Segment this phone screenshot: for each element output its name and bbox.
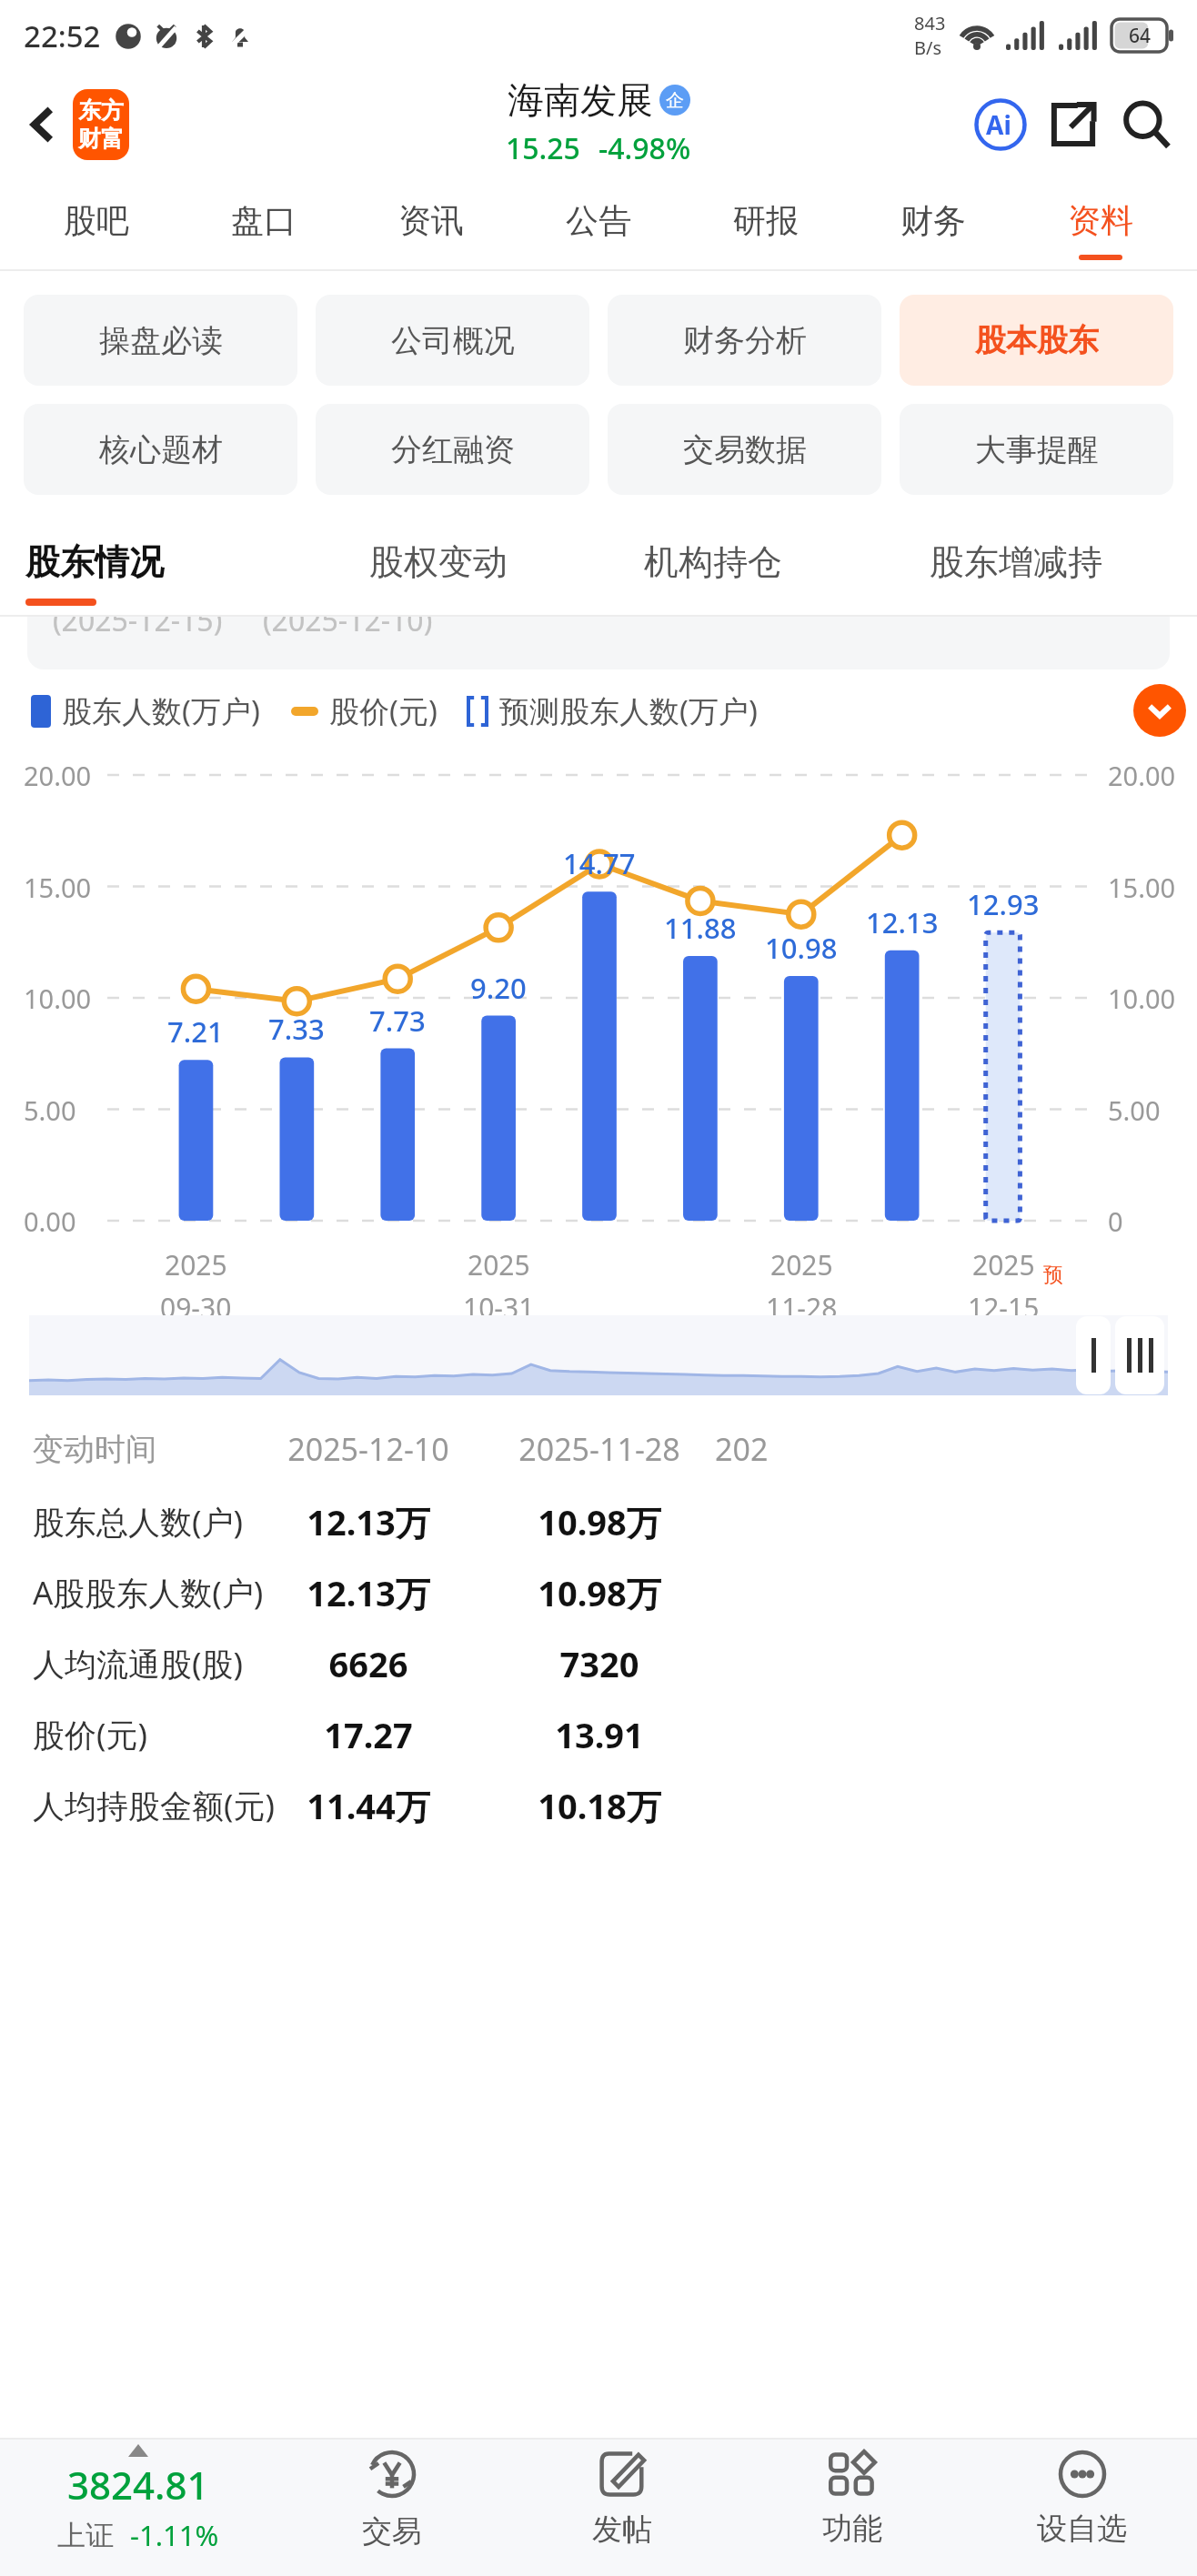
staticText: A股股东人数(户) bbox=[33, 1571, 264, 1615]
button[interactable]: 股价(元) bbox=[0, 1699, 1197, 1770]
button[interactable]: 大事提醒 bbox=[900, 404, 1173, 495]
staticText: 12.13 bbox=[866, 903, 939, 941]
staticText: 10.98万 bbox=[484, 1569, 715, 1616]
staticText: 10-31 bbox=[463, 1289, 535, 1326]
staticText: (2025-12-15) bbox=[53, 617, 223, 640]
staticText: 7.21 bbox=[167, 1012, 224, 1051]
staticText: 11.88 bbox=[664, 909, 737, 947]
staticText: 海南发展 bbox=[508, 77, 653, 123]
staticText: 20.00 bbox=[24, 758, 92, 793]
button[interactable]: AI assistant bbox=[964, 88, 1037, 161]
staticText: 0.00 bbox=[24, 1203, 76, 1239]
button[interactable]: 股吧 bbox=[13, 178, 180, 269]
staticText: 5.00 bbox=[24, 1092, 76, 1128]
staticText: 股东增减持 bbox=[930, 540, 1102, 584]
button[interactable]: 3824.81 bbox=[0, 2440, 277, 2576]
button[interactable]: Range end handle bbox=[1115, 1316, 1164, 1394]
staticText: 发帖 bbox=[592, 2511, 652, 2549]
staticText: 09-30 bbox=[160, 1289, 232, 1326]
button[interactable]: 股本股东 bbox=[900, 295, 1173, 386]
button[interactable]: East Money home bbox=[73, 89, 129, 160]
staticText: 盘口 bbox=[231, 200, 297, 241]
staticText: 公告 bbox=[566, 200, 631, 241]
button[interactable]: 机构持仓 bbox=[576, 518, 850, 617]
staticText: 11-28 bbox=[766, 1289, 838, 1326]
staticText: 大事提醒 bbox=[975, 430, 1099, 469]
button[interactable]: 分红融资 bbox=[316, 404, 589, 495]
staticText: 2025-12-10 bbox=[253, 1428, 484, 1470]
button[interactable]: Back bbox=[13, 95, 73, 155]
button[interactable]: 股东总人数(户) bbox=[0, 1486, 1197, 1557]
button[interactable]: Collapse chart options bbox=[1133, 684, 1186, 737]
staticText: 预测股东人数(万户) bbox=[499, 690, 758, 731]
staticText: 股权变动 bbox=[369, 540, 508, 584]
staticText: -1.11% bbox=[130, 2516, 219, 2554]
staticText: 股本股东 bbox=[975, 321, 1099, 360]
staticText: 22:52 bbox=[24, 15, 101, 56]
staticText: 14.77 bbox=[563, 844, 636, 882]
staticText: 12.93 bbox=[967, 885, 1040, 923]
staticText: 上证 bbox=[57, 2518, 114, 2553]
staticText: 研报 bbox=[733, 200, 799, 241]
button[interactable]: 盘口 bbox=[180, 178, 347, 269]
staticText: 股价(元) bbox=[33, 1713, 148, 1756]
staticText: 2025 bbox=[972, 1246, 1035, 1283]
staticText: 股价(元) bbox=[329, 690, 438, 731]
staticText: 7.33 bbox=[268, 1010, 325, 1048]
staticText: 交易 bbox=[362, 2512, 422, 2551]
button[interactable]: 人均持股金额(元) bbox=[0, 1770, 1197, 1841]
staticText: (2025-12-10) bbox=[263, 617, 433, 640]
staticText: B/s bbox=[914, 35, 942, 60]
button[interactable]: 公司概况 bbox=[316, 295, 589, 386]
button[interactable]: 交易数据 bbox=[608, 404, 881, 495]
button[interactable]: Search bbox=[1110, 88, 1182, 161]
button[interactable]: 设自选 bbox=[967, 2440, 1197, 2576]
button[interactable]: 财务 bbox=[850, 178, 1017, 269]
staticText: 0 bbox=[1108, 1203, 1123, 1239]
staticText: 人均流通股(股) bbox=[33, 1642, 244, 1685]
staticText: 变动时间 bbox=[33, 1430, 156, 1469]
button[interactable]: 发帖 bbox=[507, 2440, 737, 2576]
button[interactable]: 交易 bbox=[277, 2440, 507, 2576]
button[interactable]: 公告 bbox=[515, 178, 682, 269]
staticText: 预 bbox=[1043, 1263, 1063, 1288]
button[interactable]: 人均流通股(股) bbox=[0, 1628, 1197, 1699]
staticText: 12.13万 bbox=[253, 1498, 484, 1545]
staticText: 11.44万 bbox=[253, 1782, 484, 1829]
staticText: 10.98 bbox=[765, 929, 838, 967]
staticText: 2025 bbox=[165, 1246, 227, 1283]
button[interactable]: A股股东人数(户) bbox=[0, 1557, 1197, 1628]
button[interactable]: 财务分析 bbox=[608, 295, 881, 386]
staticText: 3824.81 bbox=[67, 2459, 209, 2511]
button[interactable]: 股权变动 bbox=[301, 518, 576, 617]
button[interactable]: Share bbox=[1037, 88, 1110, 161]
staticText: 7320 bbox=[484, 1640, 715, 1687]
staticText: 2025 bbox=[770, 1246, 833, 1283]
button[interactable]: 功能 bbox=[737, 2440, 967, 2576]
staticText: 2025 bbox=[468, 1246, 530, 1283]
button[interactable]: Range start handle bbox=[1076, 1316, 1111, 1394]
button[interactable]: 资料 bbox=[1017, 178, 1184, 269]
button[interactable]: 资讯 bbox=[347, 178, 515, 269]
staticText: 设自选 bbox=[1037, 2510, 1127, 2548]
staticText: 资讯 bbox=[398, 200, 464, 241]
staticText: 核心题材 bbox=[99, 430, 223, 469]
staticText: -4.98% bbox=[598, 128, 691, 168]
staticText: 人均持股金额(元) bbox=[33, 1784, 276, 1827]
staticText: 股东人数(万户) bbox=[62, 690, 260, 731]
staticText: 10.00 bbox=[24, 981, 92, 1016]
staticText: 东方 bbox=[78, 96, 124, 125]
staticText: 15.25 bbox=[506, 128, 580, 168]
button[interactable]: 操盘必读 bbox=[24, 295, 297, 386]
button[interactable]: 股东增减持 bbox=[850, 518, 1181, 617]
button[interactable]: 股东情况 bbox=[25, 518, 301, 617]
staticText: 分红融资 bbox=[391, 430, 515, 469]
staticText: 10.98万 bbox=[484, 1498, 715, 1545]
staticText: 财务分析 bbox=[683, 321, 807, 360]
staticText: 12.13万 bbox=[253, 1569, 484, 1616]
button[interactable]: 研报 bbox=[682, 178, 850, 269]
button[interactable]: 核心题材 bbox=[24, 404, 297, 495]
staticText: 功能 bbox=[822, 2510, 882, 2548]
staticText: 股东情况 bbox=[25, 540, 164, 584]
staticText: 10.18万 bbox=[484, 1782, 715, 1829]
